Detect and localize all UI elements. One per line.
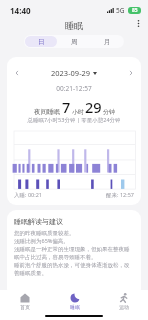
staticText: 00:21-12:57 — [7, 84, 141, 93]
button[interactable]: Previous day — [12, 68, 22, 78]
button[interactable]: 月 — [92, 36, 123, 47]
staticText: 运动 — [119, 304, 129, 310]
staticText: 睡眠 — [70, 304, 80, 310]
staticText: 醒来: 12:57 — [106, 191, 134, 199]
staticText: 睡眠解读与建议 — [14, 217, 63, 226]
staticText: 2023-09-29 — [51, 68, 91, 78]
button[interactable]: 周 — [59, 36, 90, 47]
staticText: 入睡: 00:21 — [14, 191, 42, 199]
staticText: 睡眠 — [65, 20, 83, 31]
button[interactable]: More options — [131, 16, 145, 30]
staticText: 14:40 — [10, 5, 31, 16]
button[interactable]: Next day — [126, 68, 136, 78]
staticText: 月 — [104, 38, 111, 46]
staticText: 日 — [38, 38, 45, 46]
staticText: 首页 — [20, 304, 30, 310]
staticText: 您的昨夜睡眠质量较差。 浅睡比例为65%偏高。 浅睡眠是一种正常的生理现象，但如… — [14, 230, 134, 277]
staticText: 85 — [132, 7, 138, 14]
button[interactable]: 日 — [25, 36, 57, 47]
staticText: 5G — [116, 6, 125, 15]
staticText: 分钟 — [103, 108, 115, 116]
staticText: 总睡眠7小时53分钟 | 零星小憩24分钟 — [7, 116, 141, 124]
staticText: 小时 — [72, 108, 84, 116]
staticText: 7 — [62, 97, 71, 117]
button[interactable]: 首页 — [0, 290, 50, 312]
staticText: 29 — [85, 97, 102, 117]
staticText: 周 — [71, 38, 78, 46]
button[interactable]: 睡眠 — [50, 290, 99, 312]
button[interactable]: 运动 — [99, 290, 148, 312]
staticText: 夜间睡眠 — [34, 108, 60, 116]
